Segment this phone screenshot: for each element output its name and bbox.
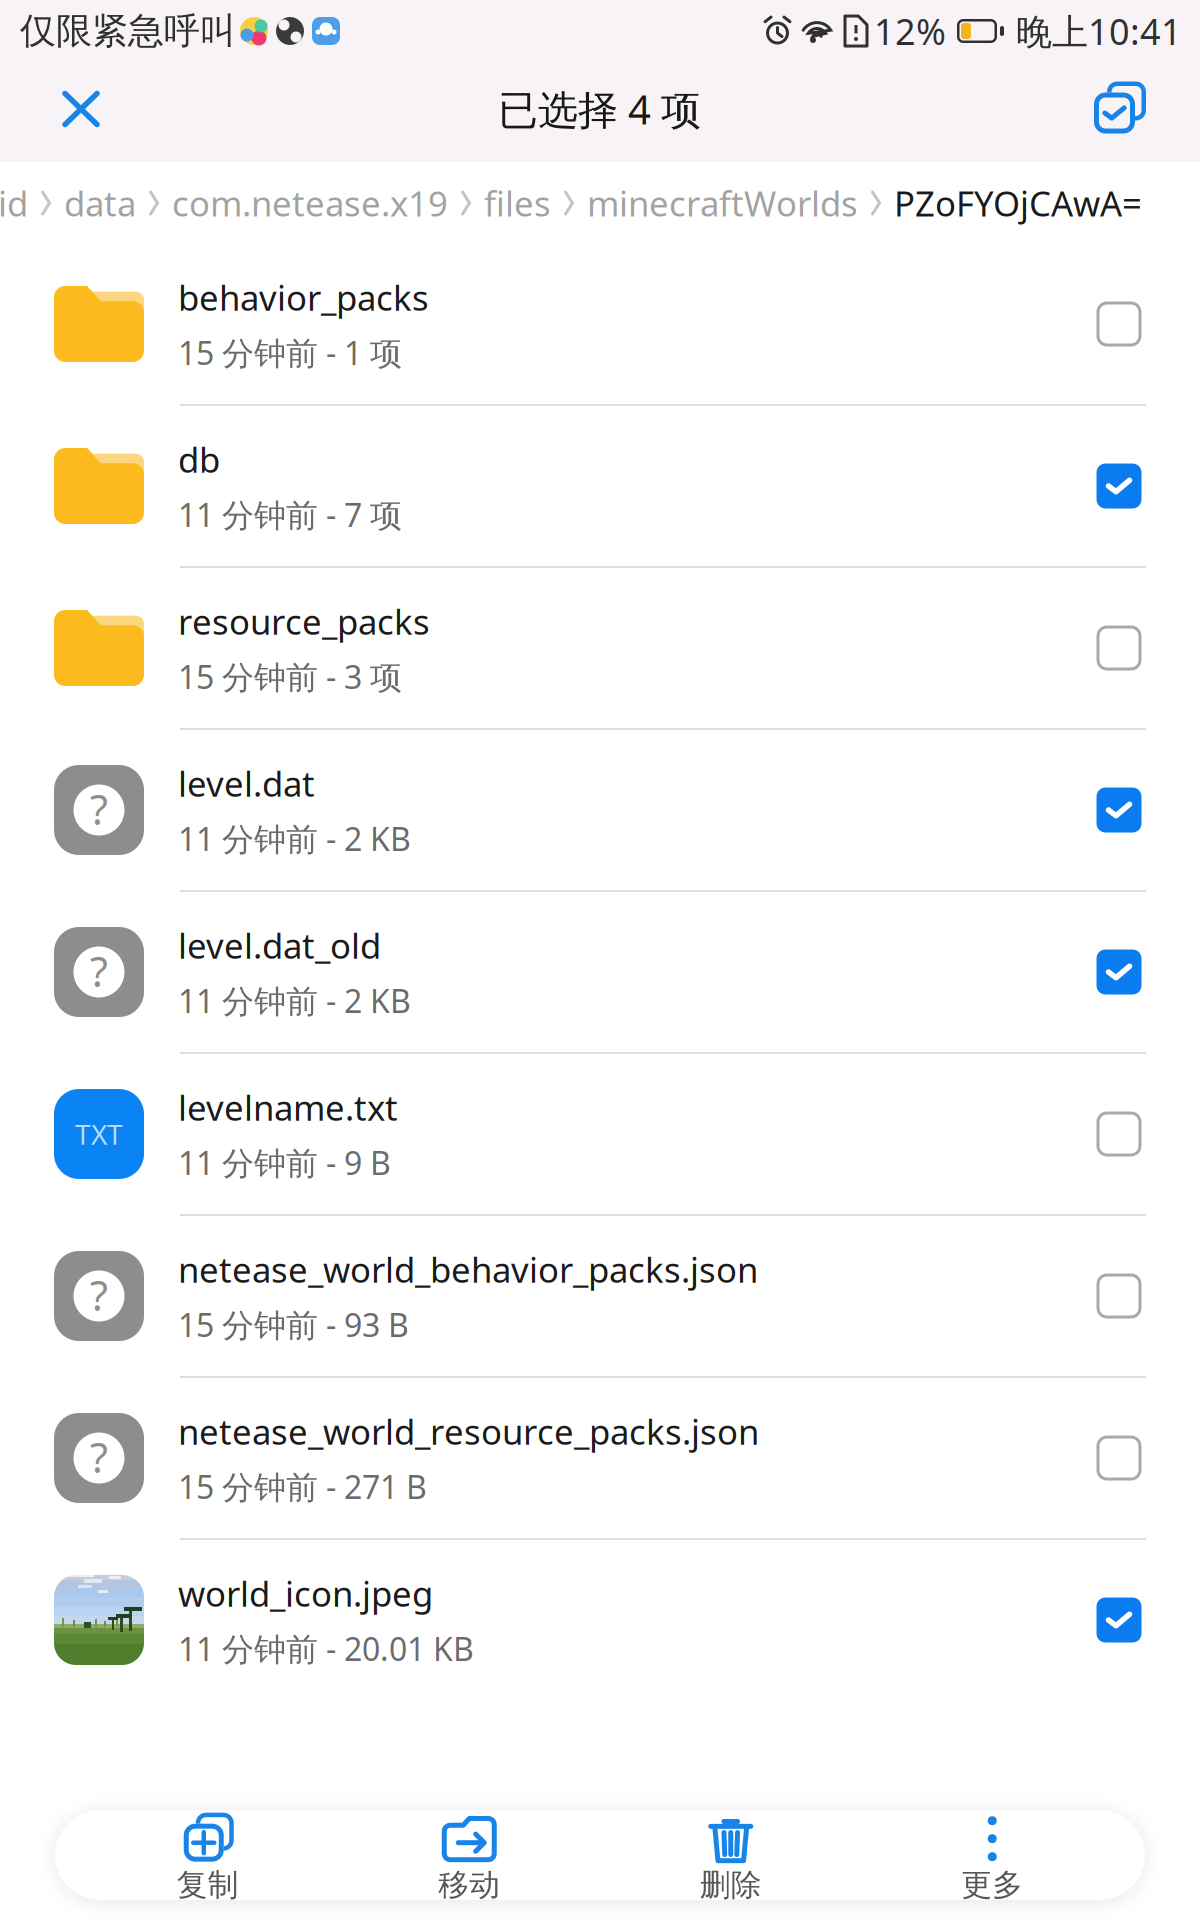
staticText: files (484, 179, 551, 227)
button[interactable]: com.netease.x19 (172, 162, 448, 244)
staticText: ? (90, 1267, 108, 1323)
staticText: level.dat (178, 760, 315, 807)
button[interactable]: resource_packs (0, 568, 1200, 728)
staticText: 11 分钟前 - 9 B (178, 1141, 391, 1184)
staticText: 11 分钟前 - 2 KB (178, 979, 411, 1022)
staticText: 删除 (700, 1866, 762, 1904)
button[interactable]: 删除 (600, 1810, 861, 1900)
staticText: netease_world_behavior_packs.json (178, 1246, 758, 1293)
staticText: data (64, 179, 136, 227)
staticText: netease_world_resource_packs.json (178, 1408, 759, 1455)
staticText: 15 分钟前 - 271 B (178, 1465, 427, 1508)
button[interactable]: id (0, 162, 28, 244)
staticText: 复制 (177, 1866, 239, 1904)
button[interactable]: behavior_packs (0, 244, 1200, 404)
staticText: 更多 (961, 1866, 1023, 1904)
staticText: 15 分钟前 - 3 项 (178, 655, 402, 698)
staticText: level.dat_old (178, 922, 381, 969)
staticText: PZoFYOjCAwA= (894, 179, 1142, 227)
staticText: resource_packs (178, 598, 430, 645)
button[interactable]: Select all (1037, 62, 1200, 162)
button[interactable]: ? (0, 1216, 1200, 1376)
button[interactable]: ? (0, 730, 1200, 890)
button[interactable]: files (484, 162, 551, 244)
staticText: 15 分钟前 - 93 B (178, 1303, 409, 1346)
staticText: 15 分钟前 - 1 项 (178, 331, 402, 374)
button[interactable]: db (0, 406, 1200, 566)
staticText: ? (90, 1429, 108, 1485)
staticText: world_icon.jpeg (178, 1570, 433, 1617)
button[interactable]: 复制 (77, 1810, 338, 1900)
button[interactable]: 更多 (861, 1810, 1123, 1900)
staticText: ? (90, 943, 108, 999)
button[interactable]: TXT (0, 1054, 1200, 1214)
staticText: levelname.txt (178, 1084, 398, 1131)
button[interactable]: Close (0, 62, 162, 162)
staticText: 11 分钟前 - 2 KB (178, 817, 411, 860)
staticText: id (0, 179, 28, 227)
button[interactable]: ? (0, 892, 1200, 1052)
staticText: 仅限紧急呼叫 (20, 8, 236, 54)
button[interactable]: world_icon.jpeg (0, 1540, 1200, 1700)
button[interactable]: data (64, 162, 136, 244)
staticText: behavior_packs (178, 274, 429, 321)
staticText: 12% (874, 6, 946, 55)
staticText: 11 分钟前 - 20.01 KB (178, 1627, 474, 1670)
button[interactable]: PZoFYOjCAwA= (894, 162, 1142, 244)
staticText: com.netease.x19 (172, 179, 448, 227)
button[interactable]: 移动 (338, 1810, 600, 1900)
staticText: ? (90, 781, 108, 837)
staticText: minecraftWorlds (587, 179, 858, 227)
staticText: TXT (75, 1115, 123, 1153)
button[interactable]: minecraftWorlds (587, 162, 858, 244)
button[interactable]: ? (0, 1378, 1200, 1538)
staticText: 移动 (438, 1866, 500, 1904)
staticText: 晚上10:41 (1016, 6, 1182, 55)
staticText: 已选择 4 项 (498, 82, 701, 136)
staticText: 11 分钟前 - 7 项 (178, 493, 402, 536)
staticText: db (178, 436, 220, 483)
